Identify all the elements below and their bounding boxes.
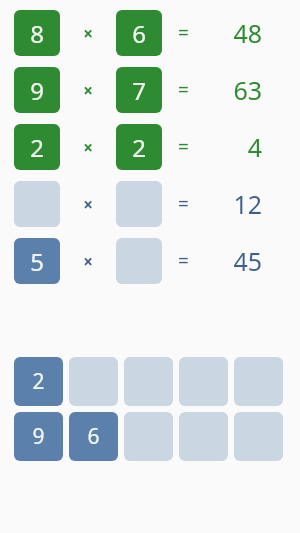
staticText: 4 xyxy=(247,130,262,164)
button[interactable]: Empty tile xyxy=(179,357,228,406)
button[interactable]: 7 xyxy=(116,67,162,113)
button[interactable]: 2 xyxy=(14,357,63,406)
button[interactable]: Empty tile xyxy=(116,181,162,227)
staticText: = xyxy=(178,77,189,103)
staticText: 6 xyxy=(132,17,146,50)
staticText: 63 xyxy=(233,73,262,107)
button[interactable]: Empty tile xyxy=(179,412,228,461)
staticText: 12 xyxy=(233,187,262,221)
button[interactable]: 2 xyxy=(116,124,162,170)
button[interactable]: 5 xyxy=(14,238,60,284)
staticText: 7 xyxy=(132,74,146,107)
staticText: × xyxy=(83,22,93,45)
staticText: 5 xyxy=(30,245,44,278)
staticText: 48 xyxy=(233,16,262,50)
button[interactable]: 6 xyxy=(116,10,162,56)
button[interactable]: 6 xyxy=(69,412,118,461)
button[interactable]: 9 xyxy=(14,67,60,113)
staticText: = xyxy=(178,20,189,46)
staticText: 6 xyxy=(87,422,100,451)
button[interactable]: 8 xyxy=(14,10,60,56)
staticText: 9 xyxy=(30,74,44,107)
staticText: × xyxy=(83,136,93,159)
staticText: 8 xyxy=(30,17,44,50)
staticText: 2 xyxy=(32,367,45,396)
staticText: = xyxy=(178,248,189,274)
staticText: 2 xyxy=(132,131,146,164)
button[interactable]: Empty tile xyxy=(124,357,173,406)
staticText: × xyxy=(83,250,93,273)
button[interactable]: Empty tile xyxy=(234,357,283,406)
staticText: × xyxy=(83,193,93,216)
button[interactable]: Empty tile xyxy=(234,412,283,461)
button[interactable]: 2 xyxy=(14,124,60,170)
button[interactable]: Empty tile xyxy=(14,181,60,227)
staticText: 2 xyxy=(30,131,44,164)
staticText: × xyxy=(83,79,93,102)
staticText: = xyxy=(178,134,189,160)
staticText: 45 xyxy=(233,244,262,278)
staticText: 9 xyxy=(32,422,45,451)
button[interactable]: Empty tile xyxy=(69,357,118,406)
button[interactable]: 9 xyxy=(14,412,63,461)
staticText: = xyxy=(178,191,189,217)
button[interactable]: Empty tile xyxy=(124,412,173,461)
button[interactable]: Empty tile xyxy=(116,238,162,284)
